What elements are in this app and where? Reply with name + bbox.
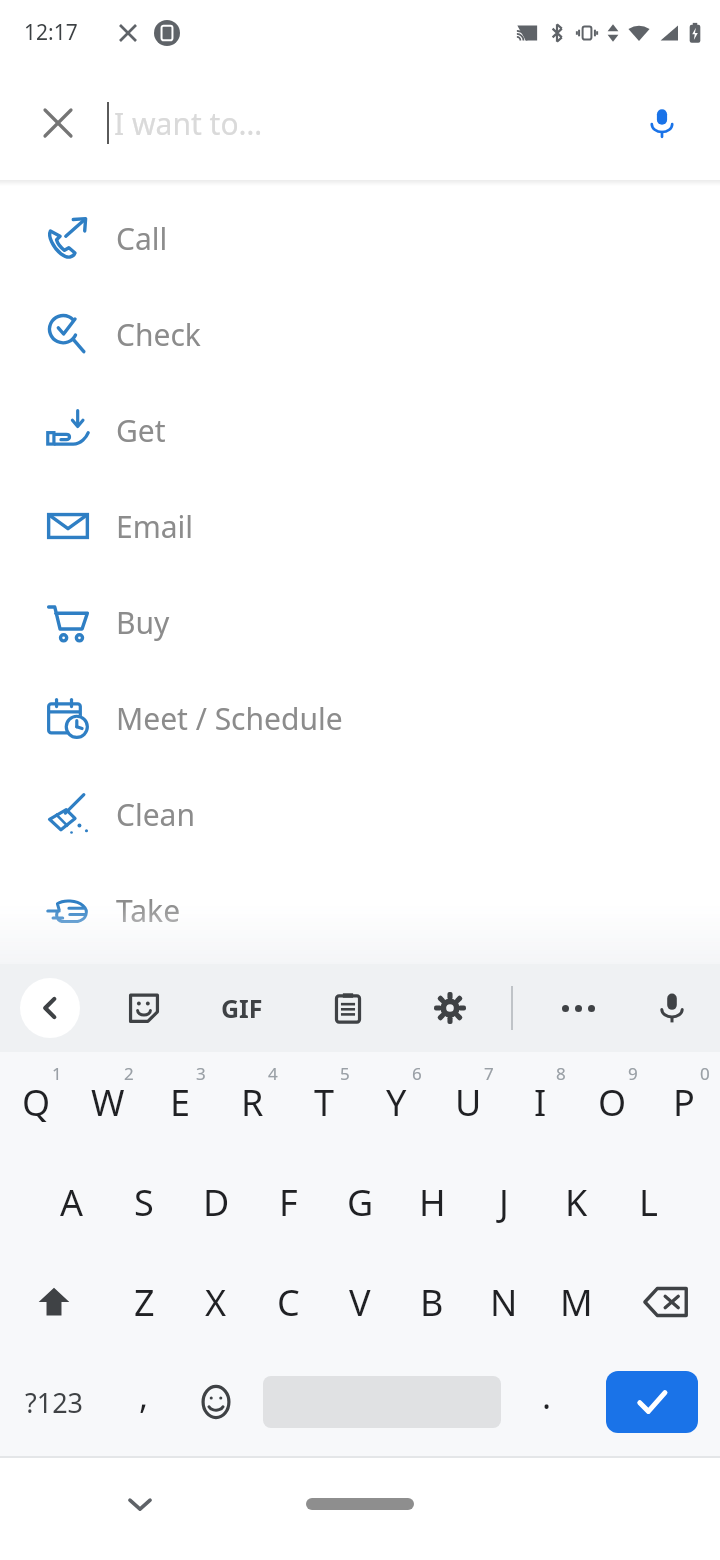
- button[interactable]: J: [468, 1152, 540, 1252]
- button[interactable]: W: [72, 1052, 144, 1152]
- button[interactable]: Clean: [0, 766, 720, 862]
- staticText: 5: [340, 1062, 350, 1085]
- staticText: 0: [700, 1062, 710, 1085]
- button[interactable]: Buy: [0, 574, 720, 670]
- staticText: Y: [386, 1078, 407, 1127]
- staticText: 2: [124, 1062, 134, 1085]
- button[interactable]: Get: [0, 382, 720, 478]
- staticText: GIF: [221, 991, 263, 1025]
- button[interactable]: B: [396, 1252, 468, 1352]
- staticText: O: [598, 1078, 627, 1127]
- button[interactable]: G: [324, 1152, 396, 1252]
- button[interactable]: Y: [360, 1052, 432, 1152]
- staticText: E: [170, 1078, 191, 1127]
- staticText: J: [499, 1178, 509, 1227]
- staticText: X: [205, 1278, 227, 1327]
- staticText: Clean: [116, 794, 195, 835]
- button[interactable]: Email: [0, 478, 720, 574]
- staticText: D: [203, 1178, 230, 1227]
- staticText: Email: [116, 506, 194, 547]
- staticText: N: [490, 1278, 518, 1327]
- button[interactable]: Enter: [583, 1352, 720, 1452]
- button[interactable]: ?123: [0, 1352, 108, 1452]
- button[interactable]: ,: [108, 1352, 180, 1452]
- staticText: H: [419, 1178, 446, 1227]
- staticText: P: [673, 1078, 695, 1127]
- staticText: 8: [556, 1062, 566, 1085]
- button[interactable]: .: [511, 1352, 583, 1452]
- button[interactable]: H: [396, 1152, 468, 1252]
- button[interactable]: Backspace: [612, 1252, 720, 1352]
- staticText: Q: [22, 1078, 51, 1127]
- staticText: 7: [484, 1062, 494, 1085]
- staticText: C: [277, 1278, 300, 1327]
- button[interactable]: Check: [0, 286, 720, 382]
- button[interactable]: Stickers: [118, 982, 170, 1034]
- staticText: G: [347, 1178, 374, 1227]
- button[interactable]: Clipboard: [322, 982, 374, 1034]
- button[interactable]: S: [108, 1152, 180, 1252]
- button[interactable]: L: [612, 1152, 684, 1252]
- staticText: T: [314, 1078, 335, 1127]
- button[interactable]: Back: [20, 978, 80, 1038]
- staticText: 3: [196, 1062, 206, 1085]
- button[interactable]: Settings: [424, 982, 476, 1034]
- staticText: R: [241, 1078, 264, 1127]
- button[interactable]: Voice input: [638, 99, 686, 147]
- staticText: Get: [116, 410, 166, 451]
- button[interactable]: Shift: [0, 1252, 108, 1352]
- button[interactable]: Meet / Schedule: [0, 670, 720, 766]
- staticText: S: [134, 1178, 154, 1227]
- staticText: K: [565, 1178, 588, 1227]
- staticText: Take: [116, 890, 181, 931]
- staticText: ?123: [25, 1384, 84, 1421]
- button[interactable]: More options: [550, 980, 606, 1036]
- staticText: Call: [116, 218, 168, 259]
- button[interactable]: Voice typing: [646, 982, 698, 1034]
- staticText: ,: [139, 1373, 149, 1419]
- staticText: Check: [116, 314, 201, 355]
- button[interactable]: Z: [108, 1252, 180, 1352]
- button[interactable]: Home: [306, 1498, 414, 1510]
- button[interactable]: GIF: [212, 978, 272, 1038]
- staticText: U: [455, 1078, 482, 1127]
- button[interactable]: R: [216, 1052, 288, 1152]
- button[interactable]: C: [252, 1252, 324, 1352]
- staticText: Buy: [116, 602, 170, 643]
- staticText: Meet / Schedule: [116, 698, 343, 739]
- staticText: 1: [52, 1062, 62, 1085]
- staticText: F: [279, 1178, 298, 1227]
- button[interactable]: O: [576, 1052, 648, 1152]
- button[interactable]: Take: [0, 862, 720, 958]
- staticText: I: [534, 1078, 547, 1127]
- staticText: .: [542, 1373, 552, 1419]
- staticText: 12:17: [24, 18, 78, 47]
- button[interactable]: P: [648, 1052, 720, 1152]
- staticText: A: [60, 1178, 84, 1227]
- button[interactable]: A: [36, 1152, 108, 1252]
- button[interactable]: I: [504, 1052, 576, 1152]
- staticText: B: [420, 1278, 444, 1327]
- staticText: W: [91, 1078, 125, 1127]
- button[interactable]: M: [540, 1252, 612, 1352]
- button[interactable]: U: [432, 1052, 504, 1152]
- button[interactable]: N: [468, 1252, 540, 1352]
- staticText: V: [349, 1278, 371, 1327]
- button[interactable]: V: [324, 1252, 396, 1352]
- button[interactable]: Emoji: [180, 1352, 252, 1452]
- button[interactable]: E: [144, 1052, 216, 1152]
- button[interactable]: F: [252, 1152, 324, 1252]
- staticText: Z: [134, 1278, 155, 1327]
- button[interactable]: Close: [36, 101, 80, 145]
- button[interactable]: [252, 1352, 511, 1452]
- staticText: I want to…: [114, 103, 263, 144]
- button[interactable]: Call: [0, 190, 720, 286]
- button[interactable]: T: [288, 1052, 360, 1152]
- button[interactable]: X: [180, 1252, 252, 1352]
- staticText: 6: [412, 1062, 422, 1085]
- button[interactable]: Q: [0, 1052, 72, 1152]
- button[interactable]: K: [540, 1152, 612, 1252]
- button[interactable]: Hide keyboard: [112, 1476, 168, 1532]
- staticText: 4: [268, 1062, 278, 1085]
- button[interactable]: D: [180, 1152, 252, 1252]
